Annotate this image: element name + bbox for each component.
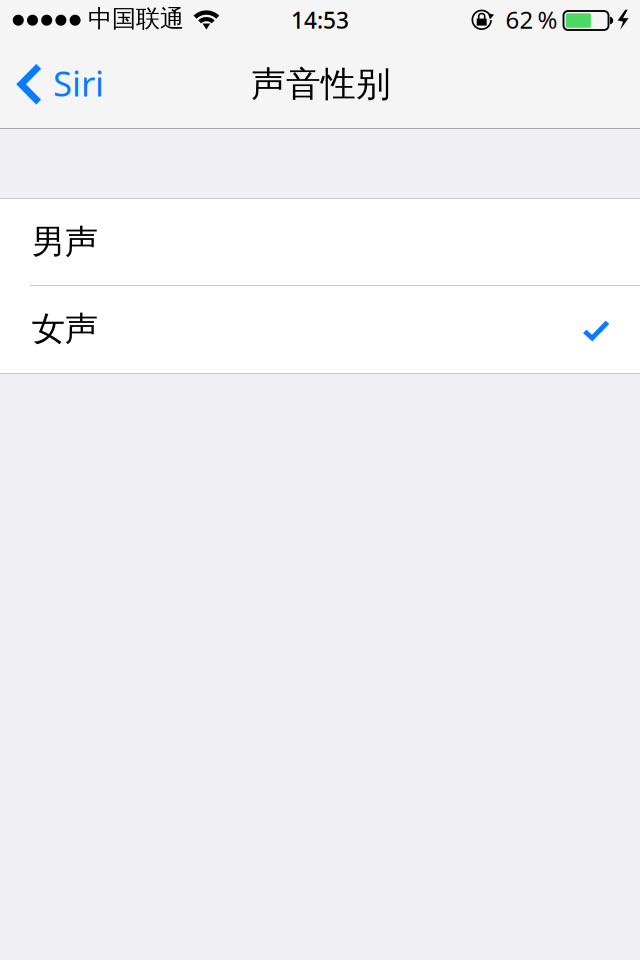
staticText: 声音性别	[251, 63, 391, 106]
button[interactable]: 女声	[0, 286, 640, 373]
button[interactable]: Back to Siri	[0, 40, 120, 128]
button[interactable]: 男声	[0, 199, 640, 286]
staticText: Siri	[53, 60, 104, 106]
staticText: 男声	[32, 221, 98, 262]
staticText: 62 %	[505, 4, 557, 35]
staticText: 女声	[32, 308, 98, 349]
staticText: 中国联通	[88, 4, 184, 33]
staticText: 14:53	[291, 5, 349, 35]
